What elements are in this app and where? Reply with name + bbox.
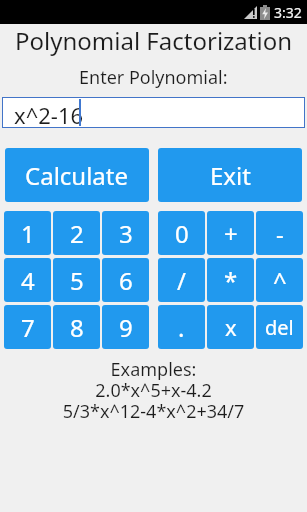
staticText: 2: [70, 217, 84, 250]
staticText: 4: [21, 264, 35, 297]
button[interactable]: 2: [53, 211, 100, 255]
staticText: 5: [70, 264, 84, 297]
staticText: 1: [21, 217, 35, 250]
staticText: Examples: 2.0*x^5+x-4.2 5/3*x^12-4*x^2+3…: [0, 357, 307, 424]
staticText: Exit: [210, 159, 251, 192]
button[interactable]: .: [158, 305, 205, 349]
staticText: .: [178, 311, 185, 344]
button[interactable]: 4: [4, 258, 51, 302]
button[interactable]: /: [158, 258, 205, 302]
staticText: Calculate: [25, 159, 129, 192]
button[interactable]: Calculate: [5, 148, 149, 202]
button[interactable]: 3: [102, 211, 149, 255]
staticText: 0: [175, 217, 189, 250]
staticText: Polynomial Factorization: [15, 24, 293, 57]
button[interactable]: x^2-16: [2, 97, 305, 128]
button[interactable]: 8: [53, 305, 100, 349]
button[interactable]: x: [207, 305, 254, 349]
staticText: 7: [21, 311, 35, 344]
button[interactable]: 0: [158, 211, 205, 255]
staticText: Enter Polynomial:: [79, 65, 228, 90]
button[interactable]: -: [256, 211, 303, 255]
staticText: del: [265, 314, 294, 341]
staticText: 6: [119, 264, 133, 297]
button[interactable]: *: [207, 258, 254, 302]
staticText: *: [224, 264, 238, 297]
button[interactable]: 6: [102, 258, 149, 302]
button[interactable]: ^: [256, 258, 303, 302]
button[interactable]: +: [207, 211, 254, 255]
button[interactable]: 1: [4, 211, 51, 255]
staticText: 8: [70, 311, 84, 344]
button[interactable]: del: [256, 305, 303, 349]
button[interactable]: Exit: [158, 148, 302, 202]
staticText: /: [177, 264, 186, 297]
staticText: -: [276, 217, 284, 250]
staticText: x^2-16: [14, 100, 84, 128]
staticText: 9: [119, 311, 133, 344]
button[interactable]: 5: [53, 258, 100, 302]
staticText: +: [224, 217, 238, 250]
staticText: 3:32: [274, 3, 302, 22]
button[interactable]: 7: [4, 305, 51, 349]
staticText: 3: [119, 217, 133, 250]
staticText: x: [225, 312, 237, 342]
button[interactable]: 9: [102, 305, 149, 349]
staticText: ^: [273, 264, 287, 297]
